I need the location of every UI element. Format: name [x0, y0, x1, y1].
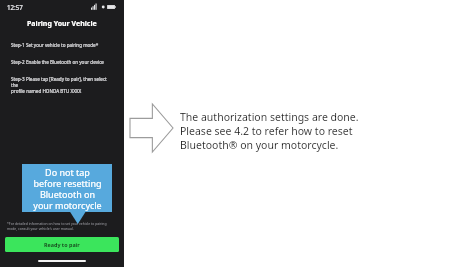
staticText: Do not tap before resetting Bluetooth on…: [33, 166, 102, 211]
staticText: Step-3 Please tap [Ready to pair], then …: [11, 76, 115, 94]
other: Next step arrow: [130, 104, 173, 152]
staticText: Pairing Your Vehicle: [27, 19, 97, 29]
button[interactable]: Ready to pair: [5, 237, 119, 252]
staticText: Step-2 Enable the Bluetooth on your devi…: [11, 59, 104, 65]
staticText: Step-1 Set your vehicle to pairing mode*: [11, 42, 99, 48]
staticText: Ready to pair: [44, 241, 80, 248]
staticText: *For detailed information on how to set …: [7, 221, 107, 231]
staticText: 12:57: [7, 3, 23, 11]
staticText: The authorization settings are done. Ple…: [180, 110, 359, 152]
